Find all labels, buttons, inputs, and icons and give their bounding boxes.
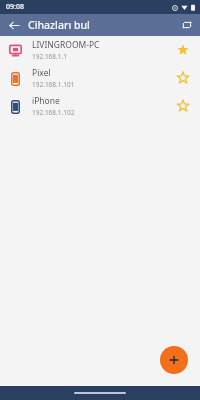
button[interactable]: Refresh <box>174 14 200 36</box>
button[interactable]: Pixel <box>0 64 200 92</box>
staticText: iPhone <box>32 95 60 107</box>
staticText: 192.168.1.101 <box>32 80 75 89</box>
button[interactable]: LIVINGROOM-PC <box>0 36 200 64</box>
staticText: 192.168.1.1 <box>32 52 67 61</box>
staticText: Pixel <box>32 67 51 79</box>
button[interactable]: Back <box>0 14 28 36</box>
staticText: 192.168.1.102 <box>32 108 75 117</box>
button[interactable]: Add favorite <box>170 65 196 91</box>
staticText: 09:08 <box>6 2 24 12</box>
button[interactable]: iPhone <box>0 92 200 120</box>
staticText: Cihazları bul <box>28 18 90 32</box>
button[interactable]: Add favorite <box>170 93 196 119</box>
staticText: LIVINGROOM-PC <box>32 39 100 51</box>
button[interactable]: Add device <box>160 346 188 374</box>
button[interactable]: Remove favorite <box>170 37 196 63</box>
